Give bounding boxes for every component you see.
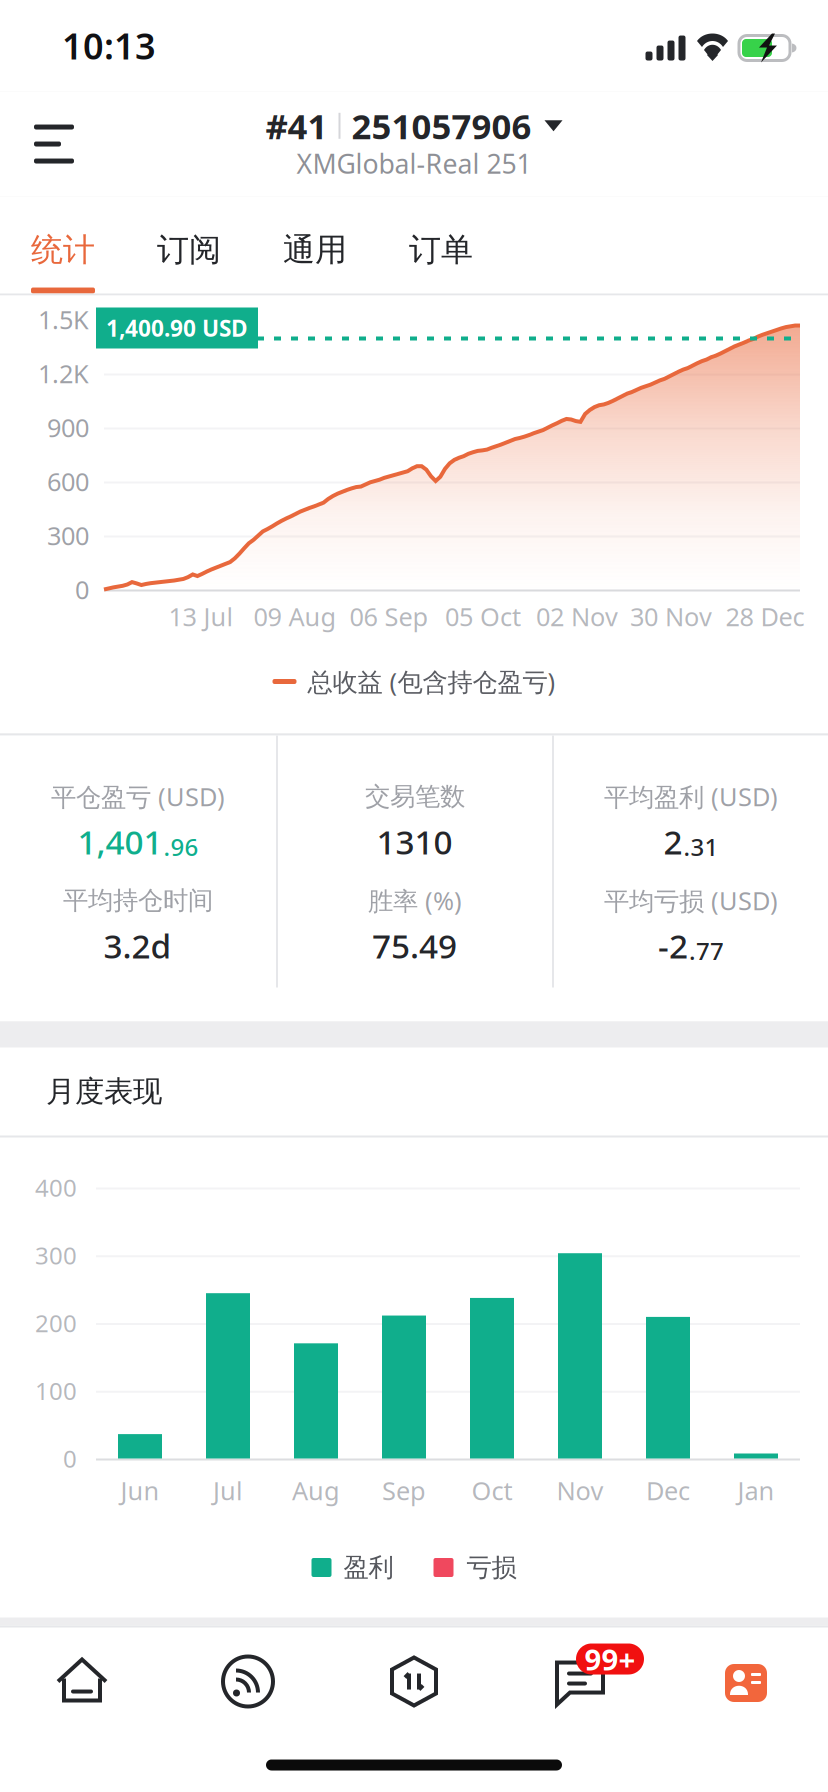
staticText: 10:13 [62, 22, 156, 69]
staticText: 平均盈利 (USD) [604, 780, 778, 813]
button[interactable]: Menu [0, 91, 108, 196]
staticText: .96 [163, 831, 198, 863]
staticText: 1,401 [77, 819, 162, 864]
staticText: 平均亏损 (USD) [604, 884, 778, 917]
staticText: 订单 [409, 230, 473, 269]
button[interactable]: Profile [663, 1627, 828, 1735]
button[interactable]: Home [0, 1627, 165, 1735]
staticText: Jan [737, 1474, 774, 1507]
staticText: 100 [35, 1375, 77, 1407]
staticText: 统计 [31, 230, 95, 269]
staticText: 300 [47, 519, 89, 552]
staticText: 1.2K [38, 357, 89, 390]
button[interactable]: 通用 [252, 196, 378, 293]
staticText: Jun [120, 1474, 159, 1507]
staticText: Sep [382, 1474, 426, 1507]
staticText: 0 [75, 573, 89, 606]
button[interactable]: 统计 [0, 196, 126, 293]
staticText: 订阅 [157, 230, 221, 269]
button[interactable]: Signals [165, 1627, 331, 1735]
staticText: 交易笔数 [365, 781, 465, 812]
staticText: Oct [471, 1474, 512, 1507]
staticText: 09 Aug [253, 600, 336, 633]
staticText: 900 [47, 411, 89, 444]
staticText: 13 Jul [168, 600, 233, 633]
staticText: 2 [663, 819, 682, 864]
staticText: 251057906 [351, 103, 531, 149]
staticText: XMGlobal-Real 251 [296, 146, 531, 181]
staticText: 02 Nov [536, 600, 618, 633]
button[interactable]: Trade [331, 1627, 497, 1735]
staticText: Nov [556, 1474, 603, 1507]
staticText: 0 [63, 1443, 77, 1474]
staticText: 300 [35, 1239, 77, 1271]
staticText: .77 [689, 935, 724, 967]
staticText: 通用 [283, 230, 347, 269]
staticText: 75.49 [372, 923, 457, 968]
button[interactable]: 订单 [378, 196, 504, 293]
staticText: 1,400.90 USD [106, 313, 248, 343]
staticText: 30 Nov [630, 600, 712, 633]
staticText: #41 [265, 103, 327, 149]
staticText: 600 [47, 465, 89, 498]
staticText: 200 [35, 1307, 77, 1339]
staticText: 平仓盈亏 (USD) [51, 780, 225, 813]
staticText: 400 [35, 1172, 77, 1203]
staticText: 3.2d [103, 923, 171, 968]
button[interactable]: Messages [497, 1627, 663, 1735]
staticText: 总收益 (包含持仓盈亏) [307, 665, 555, 698]
staticText: -2 [658, 923, 688, 968]
staticText: 28 Dec [725, 600, 804, 633]
staticText: 05 Oct [445, 600, 521, 633]
staticText: 亏损 [466, 1552, 516, 1583]
staticText: 1.5K [38, 303, 89, 336]
staticText: 盈利 [343, 1552, 393, 1583]
staticText: 胜率 (%) [368, 884, 462, 917]
staticText: 06 Sep [349, 600, 428, 633]
staticText: Dec [646, 1474, 690, 1507]
button[interactable]: 订阅 [126, 196, 252, 293]
staticText: 平均持仓时间 [63, 885, 213, 916]
staticText: .31 [683, 831, 718, 863]
staticText: 99+ [584, 1639, 635, 1678]
staticText: Aug [292, 1474, 340, 1507]
staticText: 月度表现 [46, 1073, 162, 1109]
staticText: Jul [213, 1474, 243, 1507]
staticText: 1310 [376, 819, 452, 864]
